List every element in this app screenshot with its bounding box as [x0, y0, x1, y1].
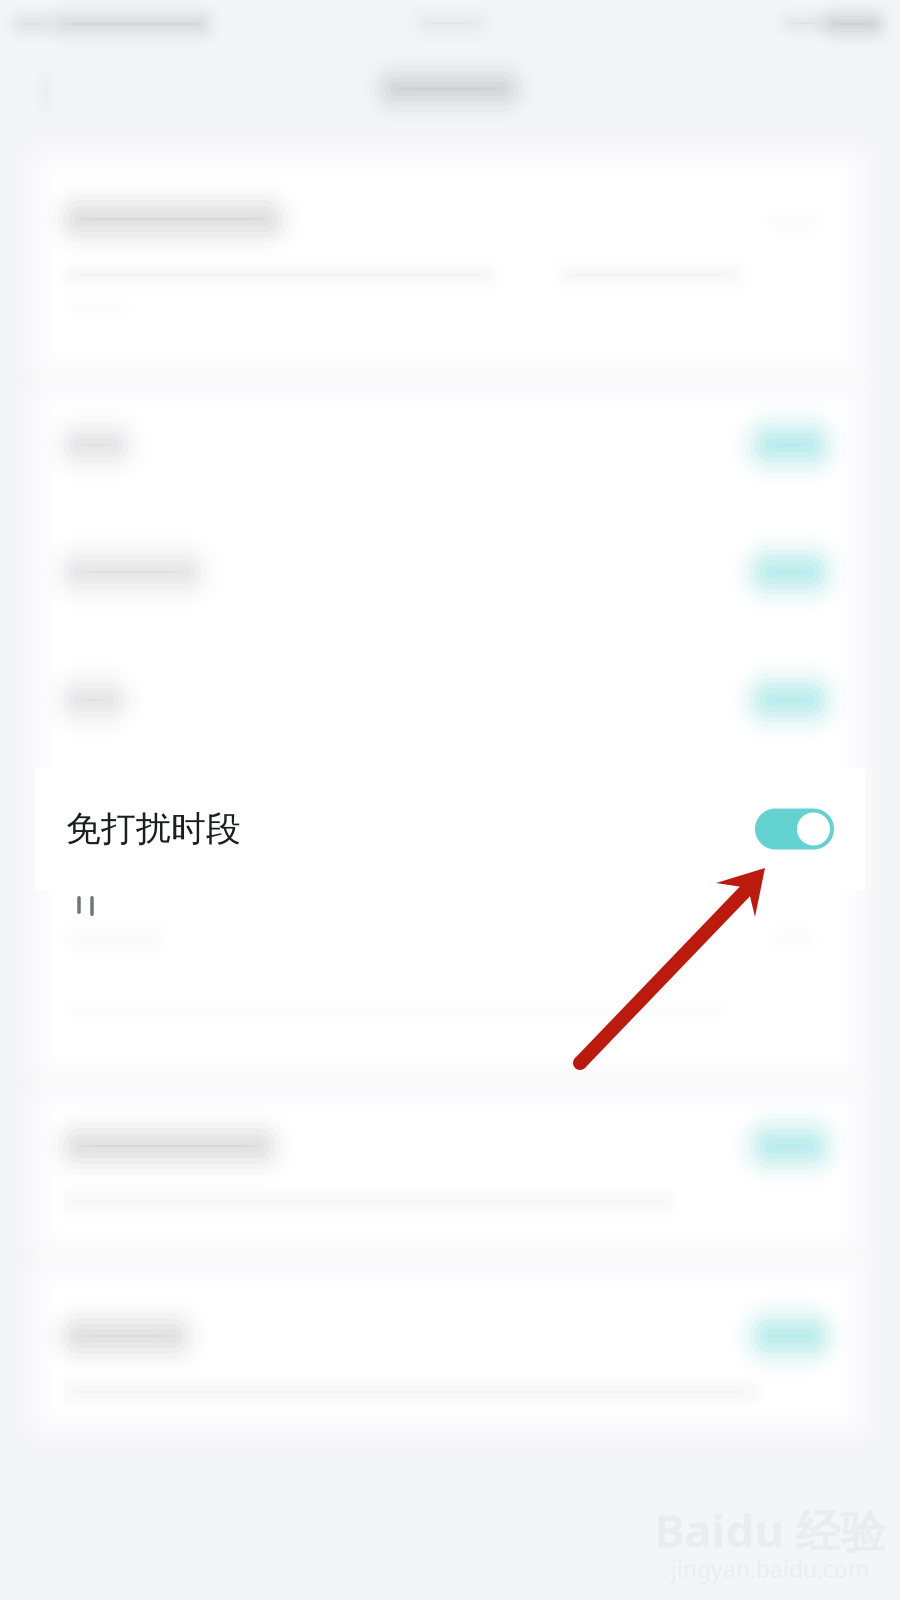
staticText: 免打扰时段 [66, 808, 241, 850]
button[interactable]: 免打扰时段 [35, 768, 865, 889]
button[interactable]: Setting [35, 636, 865, 763]
button[interactable]: Setting [35, 508, 865, 635]
button[interactable]: Setting [35, 381, 865, 508]
staticText: Baidu 经验 [654, 1500, 885, 1560]
